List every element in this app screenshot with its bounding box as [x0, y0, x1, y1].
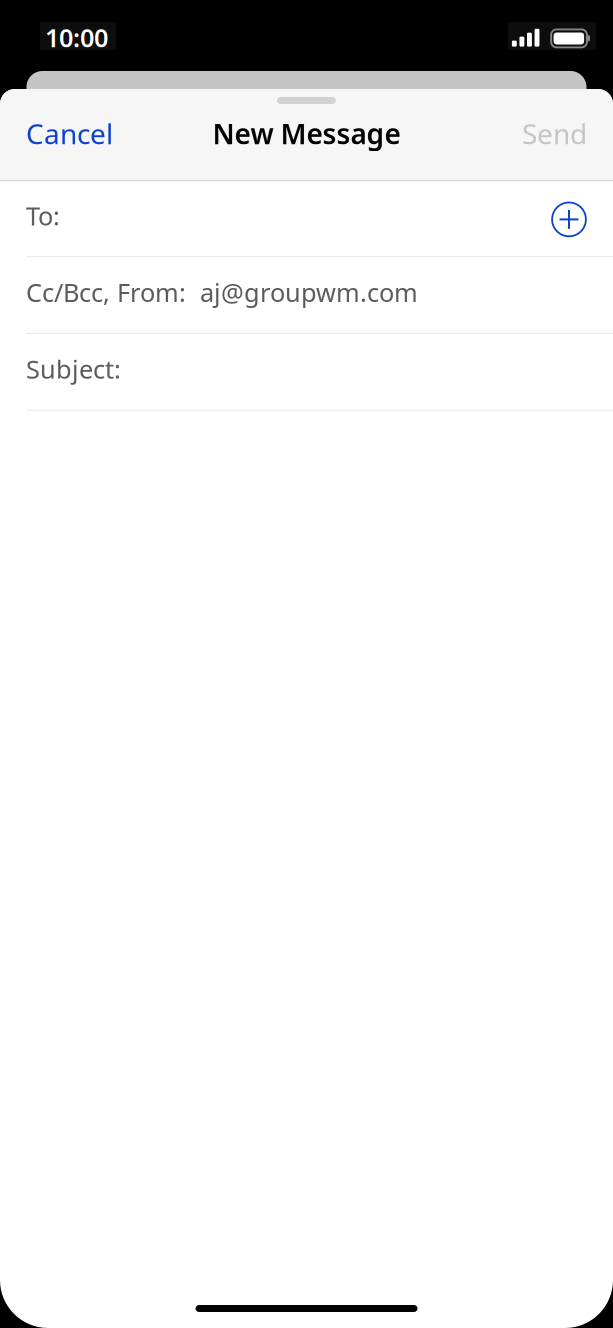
button[interactable]: Cancel	[26, 100, 113, 166]
staticText: To:	[26, 199, 60, 232]
button[interactable]: Send	[522, 100, 587, 166]
staticText: 10:00	[45, 21, 108, 54]
staticText: Subject:	[26, 352, 121, 386]
button[interactable]: To:	[0, 181, 613, 256]
button[interactable]: Add contact	[525, 201, 613, 237]
button[interactable]: Cc/Bcc, From: aj@groupwm.com	[0, 257, 613, 333]
staticText: Cancel	[26, 115, 113, 152]
staticText: New Message	[212, 115, 400, 152]
staticText: Cc/Bcc, From: aj@groupwm.com	[26, 275, 418, 309]
staticText: Send	[522, 115, 587, 152]
button[interactable]: Subject:	[0, 334, 613, 410]
